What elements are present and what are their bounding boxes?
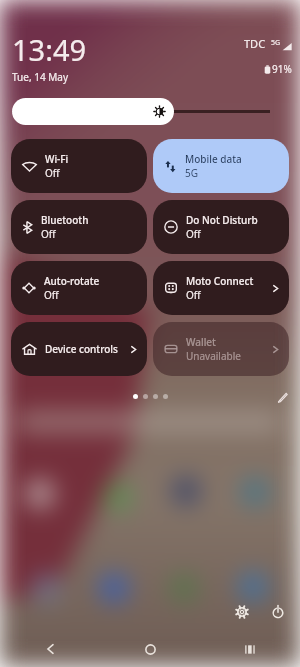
staticText: Do Not Disturb <box>186 213 258 227</box>
button[interactable]: Auto-rotate <box>11 261 147 315</box>
staticText: 5G <box>185 166 198 180</box>
button[interactable]: Back <box>0 631 100 667</box>
button[interactable]: Home <box>100 631 200 667</box>
staticText: 13:49 <box>12 30 87 69</box>
staticText: TDC <box>244 36 266 51</box>
staticText: 91% <box>272 62 292 76</box>
staticText: 5G <box>271 38 281 48</box>
button[interactable]: Moto Connect <box>153 261 289 315</box>
button[interactable]: Settings <box>233 603 251 621</box>
button[interactable]: Device controls <box>11 322 147 376</box>
button[interactable]: Wi-Fi <box>11 139 147 193</box>
button[interactable]: Power <box>269 603 287 621</box>
button[interactable]: Mobile data <box>153 139 289 193</box>
staticText: Unavailable <box>186 349 241 363</box>
staticText: Off <box>45 166 60 180</box>
button[interactable]: Edit tiles <box>272 386 292 406</box>
staticText: Device controls <box>45 342 118 356</box>
staticText: Wallet <box>186 335 216 349</box>
staticText: Wi-Fi <box>45 152 69 166</box>
button[interactable]: Bluetooth <box>11 200 147 254</box>
staticText: Bluetooth <box>41 213 89 227</box>
staticText: Mobile data <box>185 152 242 166</box>
button[interactable]: Do Not Disturb <box>153 200 289 254</box>
staticText: Tue, 14 May <box>12 70 68 84</box>
staticText: Off <box>44 288 59 302</box>
staticText: Off <box>41 227 56 241</box>
button[interactable]: Recents <box>200 631 300 667</box>
staticText: Off <box>186 227 201 241</box>
staticText: Auto-rotate <box>44 274 100 288</box>
button[interactable]: Brightness <box>12 98 289 125</box>
button[interactable]: Wallet <box>153 322 289 376</box>
staticText: Off <box>186 288 201 302</box>
staticText: Moto Connect <box>186 274 254 288</box>
